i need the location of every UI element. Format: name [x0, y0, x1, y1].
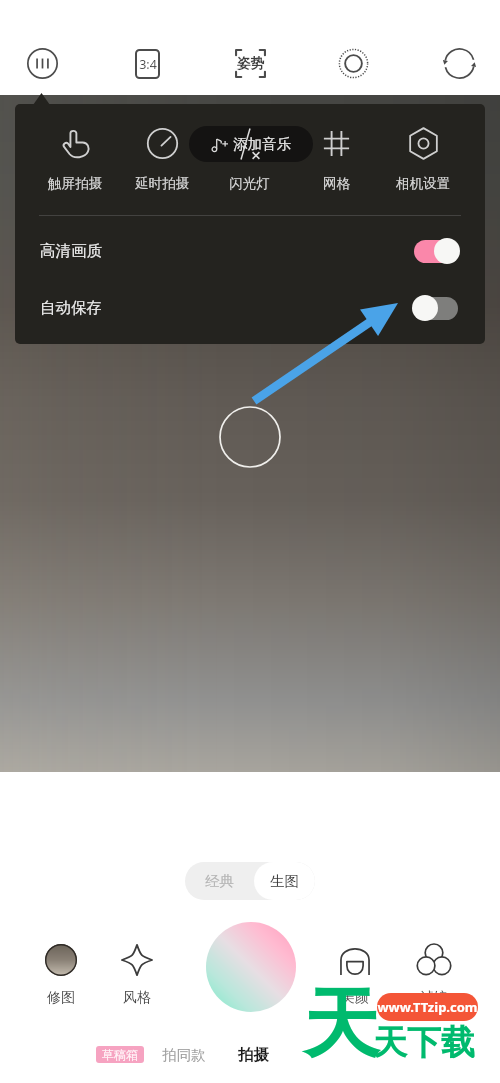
button[interactable]: 闪光灯	[207, 126, 291, 192]
button[interactable]: 触屏拍摄	[33, 126, 117, 192]
staticText: 经典	[205, 872, 234, 890]
staticText: 闪光灯	[229, 175, 270, 192]
button[interactable]: Aspect ratio 3 to 4	[121, 37, 173, 89]
button[interactable]: 延时拍摄	[120, 126, 204, 192]
button[interactable]: Pose guide	[224, 37, 276, 89]
staticText: 天下载	[373, 1021, 475, 1064]
staticText: 延时拍摄	[135, 175, 189, 192]
button[interactable]: 自动保存	[15, 282, 485, 334]
staticText: 高清画质	[40, 241, 102, 261]
button[interactable]: 修图	[23, 942, 99, 1007]
staticText: 天	[303, 977, 379, 1073]
button[interactable]: 网格	[294, 126, 378, 192]
staticText: 添加音乐	[233, 135, 291, 153]
button[interactable]: Timer	[327, 37, 379, 89]
button[interactable]: Switch camera	[433, 37, 485, 89]
button[interactable]: Filters	[16, 37, 68, 89]
staticText: 风格	[123, 989, 151, 1007]
button[interactable]: 滤镜	[396, 942, 472, 1007]
button[interactable]: 风格	[99, 942, 175, 1007]
staticText: 美颜	[341, 989, 369, 1007]
button[interactable]: 添加音乐	[189, 126, 313, 162]
staticText: 姿势	[237, 55, 264, 72]
staticText: 相机设置	[396, 175, 450, 192]
staticText: 触屏拍摄	[48, 175, 102, 192]
staticText: 3:4	[139, 56, 157, 73]
button[interactable]: Shutter	[206, 922, 296, 1012]
staticText: 自动保存	[40, 298, 102, 318]
button[interactable]: 相机设置	[381, 126, 465, 192]
staticText: 修图	[47, 989, 75, 1007]
button[interactable]: 经典	[185, 862, 254, 900]
staticText: 草稿箱	[102, 1047, 138, 1062]
button[interactable]: 拍同款	[155, 1042, 213, 1068]
staticText: 网格	[323, 175, 350, 192]
staticText: 生图	[270, 872, 299, 890]
button[interactable]: 拍摄	[225, 1041, 281, 1069]
staticText: 拍同款	[162, 1046, 206, 1064]
button[interactable]: 生图	[254, 862, 315, 900]
button[interactable]: 草稿箱	[96, 1046, 144, 1063]
staticText: www.TTzip.com	[377, 998, 478, 1016]
staticText: 拍摄	[238, 1045, 269, 1065]
button[interactable]: 美颜	[317, 942, 393, 1007]
button[interactable]: 高清画质	[15, 225, 485, 277]
staticText: 滤镜	[420, 989, 448, 1007]
